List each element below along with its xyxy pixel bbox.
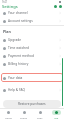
button[interactable]: Your data bbox=[1, 73, 63, 82]
staticText: Shorts bbox=[20, 116, 28, 119]
button[interactable]: Your channel bbox=[0, 9, 64, 17]
staticText: Subs bbox=[37, 116, 43, 119]
staticText: Help & FAQ bbox=[8, 88, 25, 92]
button[interactable]: Subs bbox=[32, 109, 48, 120]
button[interactable]: Upgrade bbox=[0, 36, 64, 44]
button[interactable]: Restore purchases bbox=[3, 100, 61, 108]
button[interactable]: You bbox=[48, 109, 64, 120]
button[interactable]: Help & FAQ bbox=[0, 86, 64, 94]
button[interactable]: Billing history bbox=[0, 60, 64, 68]
staticText: Home bbox=[5, 116, 12, 119]
staticText: Settings bbox=[2, 4, 18, 9]
button[interactable]: Home bbox=[0, 109, 16, 120]
button[interactable]: Time watched bbox=[0, 44, 64, 52]
staticText: Billing history bbox=[8, 62, 29, 66]
button[interactable]: Payment method bbox=[0, 52, 64, 60]
staticText: Payment method bbox=[8, 54, 34, 58]
button[interactable]: Account settings bbox=[0, 17, 64, 25]
button[interactable]: Shorts bbox=[16, 109, 32, 120]
staticText: Account settings bbox=[8, 19, 33, 23]
other: Account bbox=[59, 5, 62, 8]
staticText: Plan bbox=[3, 29, 11, 34]
staticText: Restore purchases bbox=[18, 102, 46, 106]
staticText: 9:41 bbox=[2, 0, 8, 4]
other: Search bbox=[54, 5, 57, 8]
staticText: Time watched bbox=[8, 46, 29, 50]
staticText: Upgrade bbox=[8, 38, 22, 42]
staticText: You bbox=[54, 116, 59, 119]
staticText: Your channel bbox=[8, 11, 28, 15]
staticText: Your data bbox=[8, 76, 23, 80]
